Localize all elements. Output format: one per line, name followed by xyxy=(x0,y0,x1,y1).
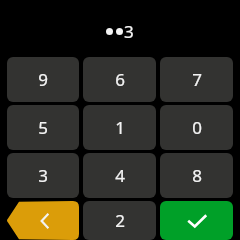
staticText: 3 xyxy=(38,164,48,187)
button[interactable]: 4 xyxy=(83,153,156,198)
button[interactable]: 5 xyxy=(7,105,79,150)
staticText: 6 xyxy=(115,68,125,91)
button[interactable]: 7 xyxy=(160,57,233,102)
button[interactable]: 3 xyxy=(7,153,79,198)
button[interactable]: 2 xyxy=(83,201,156,240)
button[interactable]: 0 xyxy=(160,105,233,150)
staticText: 2 xyxy=(115,209,125,232)
staticText: 0 xyxy=(192,116,202,139)
button[interactable]: 1 xyxy=(83,105,156,150)
button[interactable]: 6 xyxy=(83,57,156,102)
staticText: 4 xyxy=(115,164,125,187)
staticText: 7 xyxy=(192,68,202,91)
button[interactable]: Delete xyxy=(7,201,79,240)
staticText: 3 xyxy=(124,20,134,43)
button[interactable]: 8 xyxy=(160,153,233,198)
staticText: 1 xyxy=(115,116,125,139)
staticText: 5 xyxy=(38,116,48,139)
button[interactable]: Confirm xyxy=(160,201,233,240)
button[interactable]: 9 xyxy=(7,57,79,102)
staticText: 9 xyxy=(38,68,48,91)
staticText: 8 xyxy=(192,164,202,187)
